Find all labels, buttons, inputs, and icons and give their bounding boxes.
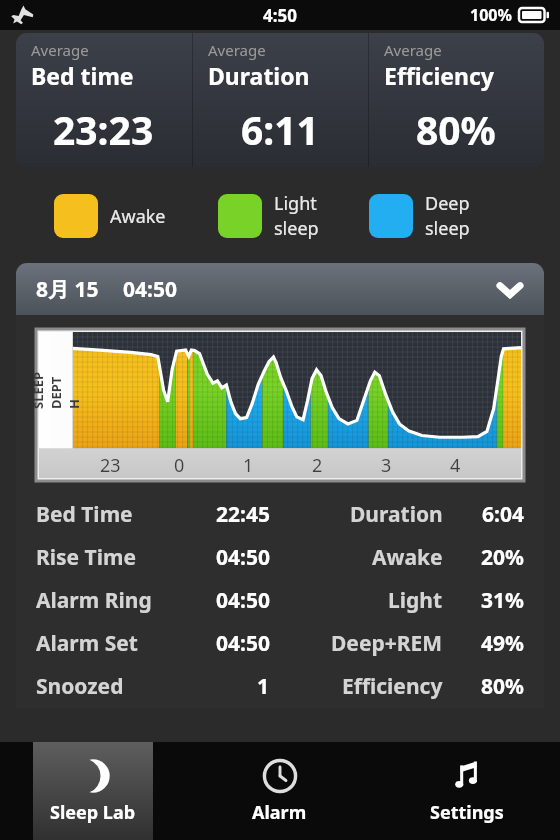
- staticText: 3: [381, 453, 392, 478]
- staticText: Alarm: [252, 800, 307, 825]
- staticText: Average: [208, 40, 266, 60]
- staticText: Settings: [430, 800, 504, 825]
- staticText: Duration: [350, 500, 443, 529]
- staticText: Average: [384, 40, 442, 60]
- button[interactable]: 8月 15: [16, 263, 544, 315]
- button[interactable]: Alarm: [252, 742, 307, 840]
- staticText: 2: [312, 453, 323, 478]
- button[interactable]: Awake: [54, 194, 166, 238]
- staticText: Light: [274, 191, 317, 216]
- staticText: 22:45: [216, 500, 270, 529]
- staticText: 6:11: [241, 103, 319, 156]
- button[interactable]: Average: [16, 33, 544, 167]
- staticText: Bed time: [31, 60, 134, 91]
- staticText: 31%: [481, 586, 524, 615]
- staticText: 6:04: [482, 500, 524, 529]
- button[interactable]: Settings: [430, 742, 504, 840]
- staticText: 0: [174, 453, 185, 478]
- staticText: Efficiency: [342, 672, 443, 701]
- staticText: 04:50: [216, 586, 270, 615]
- staticText: sleep: [425, 216, 470, 241]
- staticText: 80%: [481, 672, 524, 701]
- staticText: sleep: [274, 216, 319, 241]
- staticText: Rise Time: [36, 543, 137, 572]
- staticText: 80%: [416, 103, 496, 156]
- staticText: 04:50: [216, 543, 270, 572]
- staticText: 100%: [470, 4, 512, 26]
- button[interactable]: Light: [218, 191, 319, 241]
- button[interactable]: Bed Time: [16, 493, 544, 536]
- staticText: 4: [450, 453, 461, 478]
- staticText: Awake: [110, 204, 166, 229]
- staticText: Snoozed: [36, 672, 124, 701]
- staticText: 4:50: [263, 4, 297, 27]
- staticText: Duration: [208, 60, 310, 91]
- staticText: 49%: [481, 629, 524, 658]
- staticText: Alarm Set: [36, 629, 138, 658]
- other: Airplane mode: [10, 3, 34, 27]
- staticText: Sleep Lab: [50, 800, 136, 825]
- staticText: 04:50: [216, 629, 270, 658]
- staticText: 23: [100, 453, 121, 478]
- other: Collapse details: [496, 275, 524, 303]
- staticText: 1: [243, 453, 254, 478]
- staticText: Deep: [425, 191, 470, 216]
- staticText: 04:50: [123, 275, 177, 304]
- button[interactable]: Sleep Lab: [33, 742, 153, 840]
- staticText: SLEEP DEPTH: [29, 369, 83, 409]
- staticText: Average: [31, 40, 89, 60]
- staticText: Awake: [372, 543, 443, 572]
- staticText: 23:23: [53, 103, 154, 156]
- button[interactable]: Snoozed: [16, 665, 544, 708]
- staticText: Alarm Ring: [36, 586, 152, 615]
- staticText: Light: [388, 586, 443, 615]
- staticText: Bed Time: [36, 500, 133, 529]
- staticText: 8月 15: [36, 275, 99, 304]
- staticText: 20%: [481, 543, 524, 572]
- button[interactable]: Alarm Set: [16, 622, 544, 665]
- button[interactable]: Deep: [369, 191, 470, 241]
- button[interactable]: Rise Time: [16, 536, 544, 579]
- staticText: 1: [257, 672, 270, 701]
- staticText: Efficiency: [384, 60, 494, 91]
- staticText: Deep+REM: [331, 629, 443, 658]
- button[interactable]: Alarm Ring: [16, 579, 544, 622]
